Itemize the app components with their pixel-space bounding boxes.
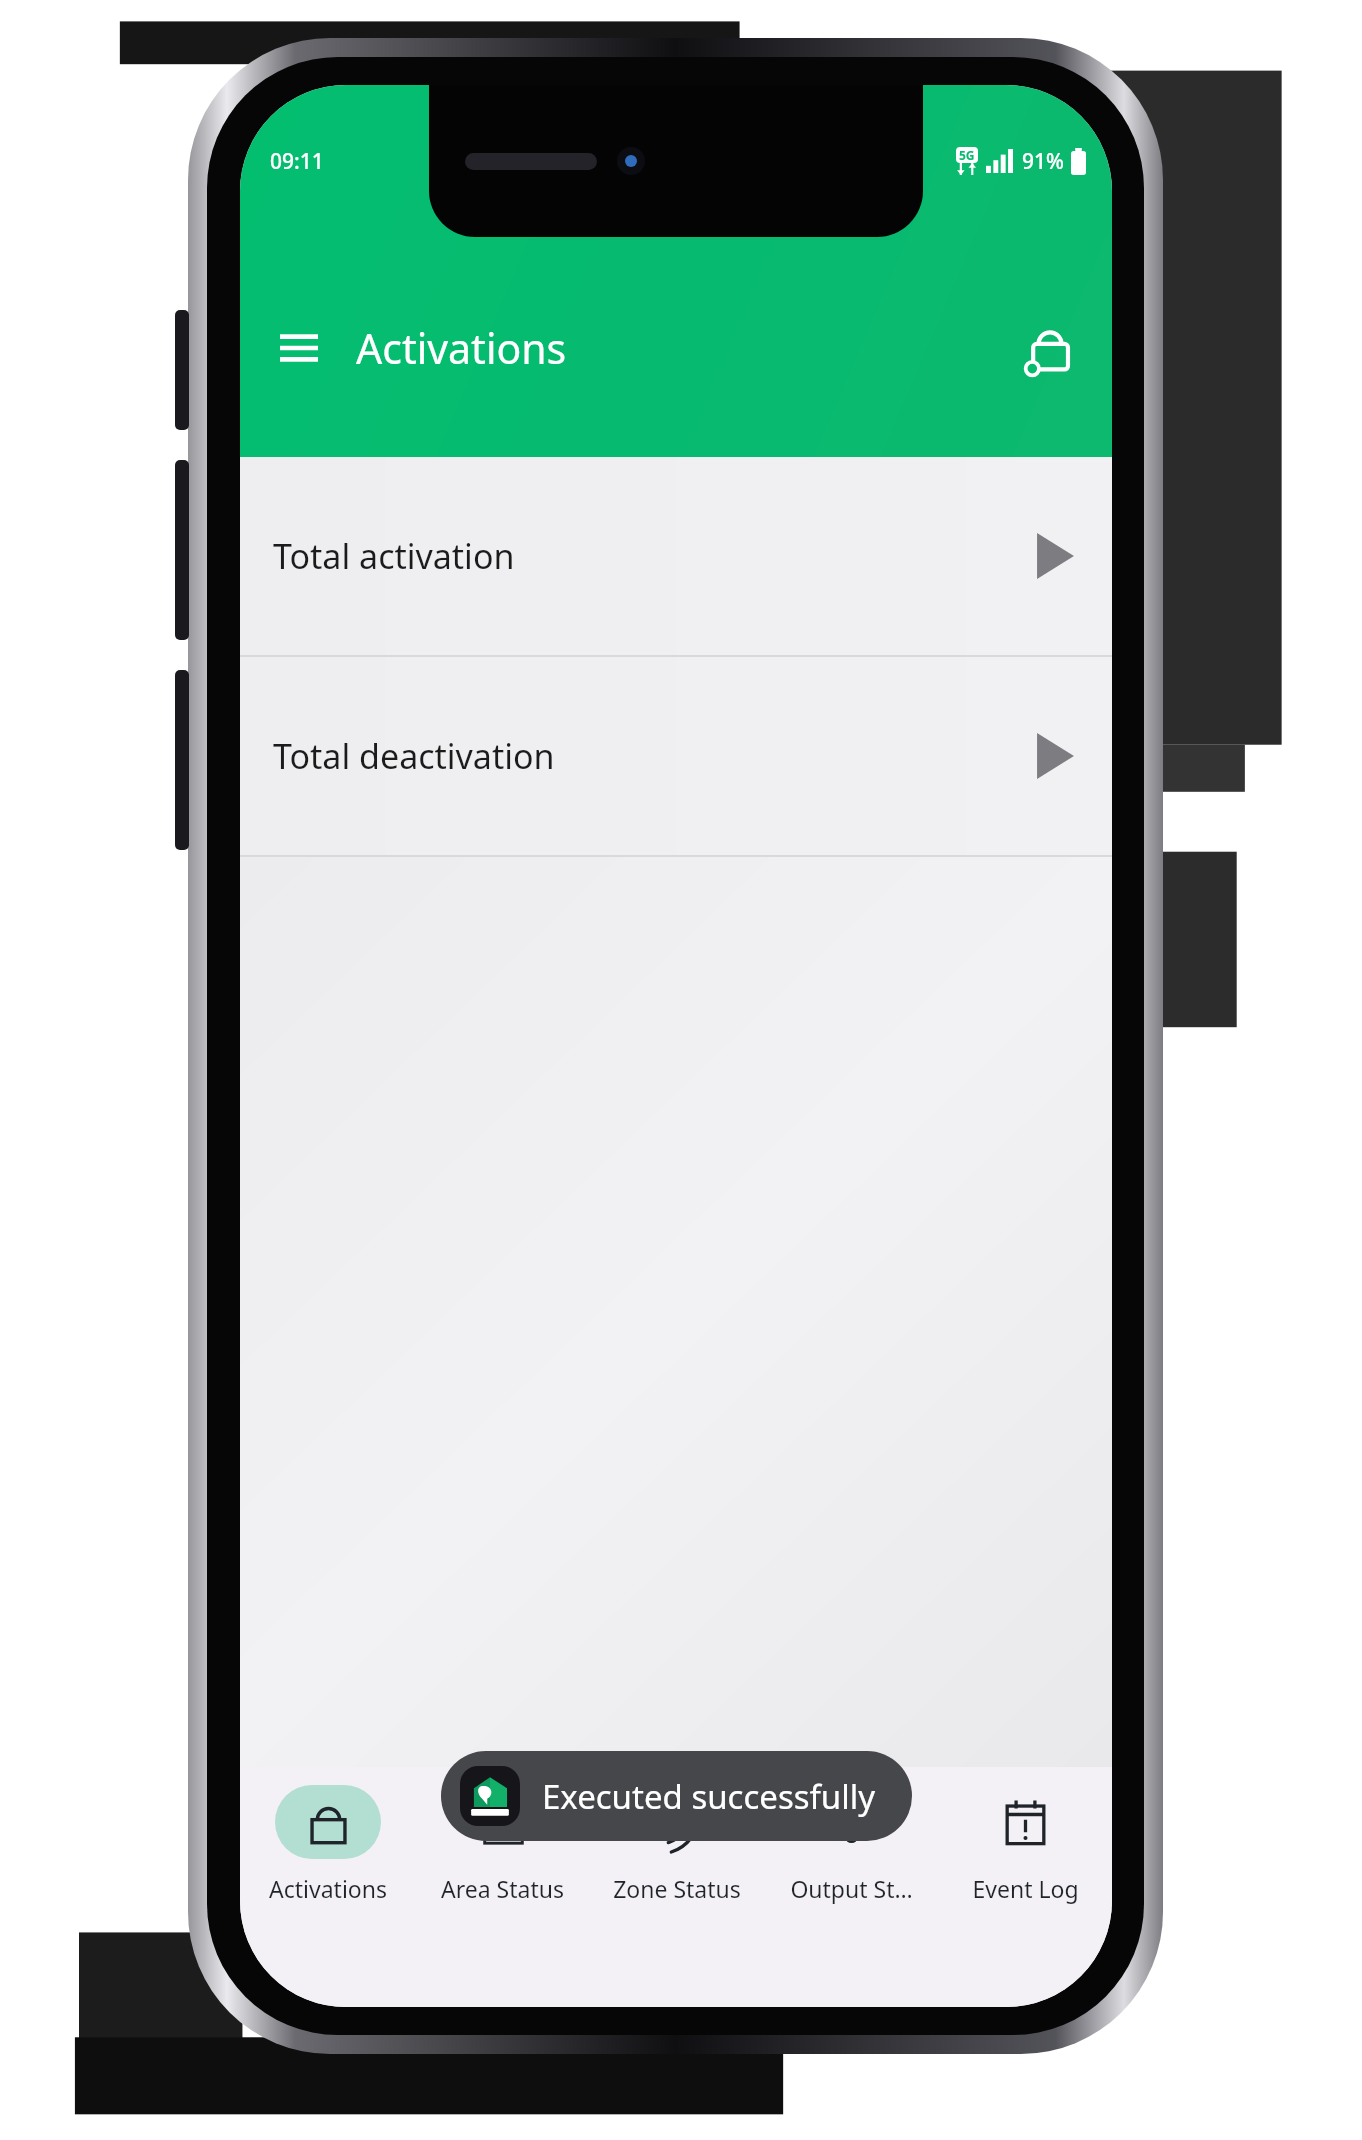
staticText: Event Log [972,1873,1079,1904]
button[interactable]: Output St… [764,1767,938,2007]
button[interactable]: Event Log [938,1767,1112,2007]
staticText: Activations [356,320,567,376]
staticText: 91% [1022,147,1064,176]
staticText: Area Status [441,1873,564,1904]
staticText: Total deactivation [273,733,555,779]
button[interactable]: Open navigation menu [266,315,332,381]
staticText: 09:11 [270,147,324,176]
staticText: Total activation [273,533,515,579]
button[interactable]: Zone Status [590,1767,764,2007]
staticText: Output St… [790,1873,913,1904]
staticText: Zone Status [613,1873,741,1904]
staticText: Activations [269,1873,387,1904]
button[interactable]: Total activation [240,457,1112,655]
staticText: 5G [959,147,975,163]
button[interactable]: Lock system [1014,312,1086,384]
button[interactable]: Activations [240,1767,415,2007]
button[interactable]: Total deactivation [240,657,1112,855]
staticText: Executed successfully [542,1774,876,1819]
button[interactable]: Executed successfully [441,1751,912,1841]
button[interactable]: Area Status [415,1767,590,2007]
